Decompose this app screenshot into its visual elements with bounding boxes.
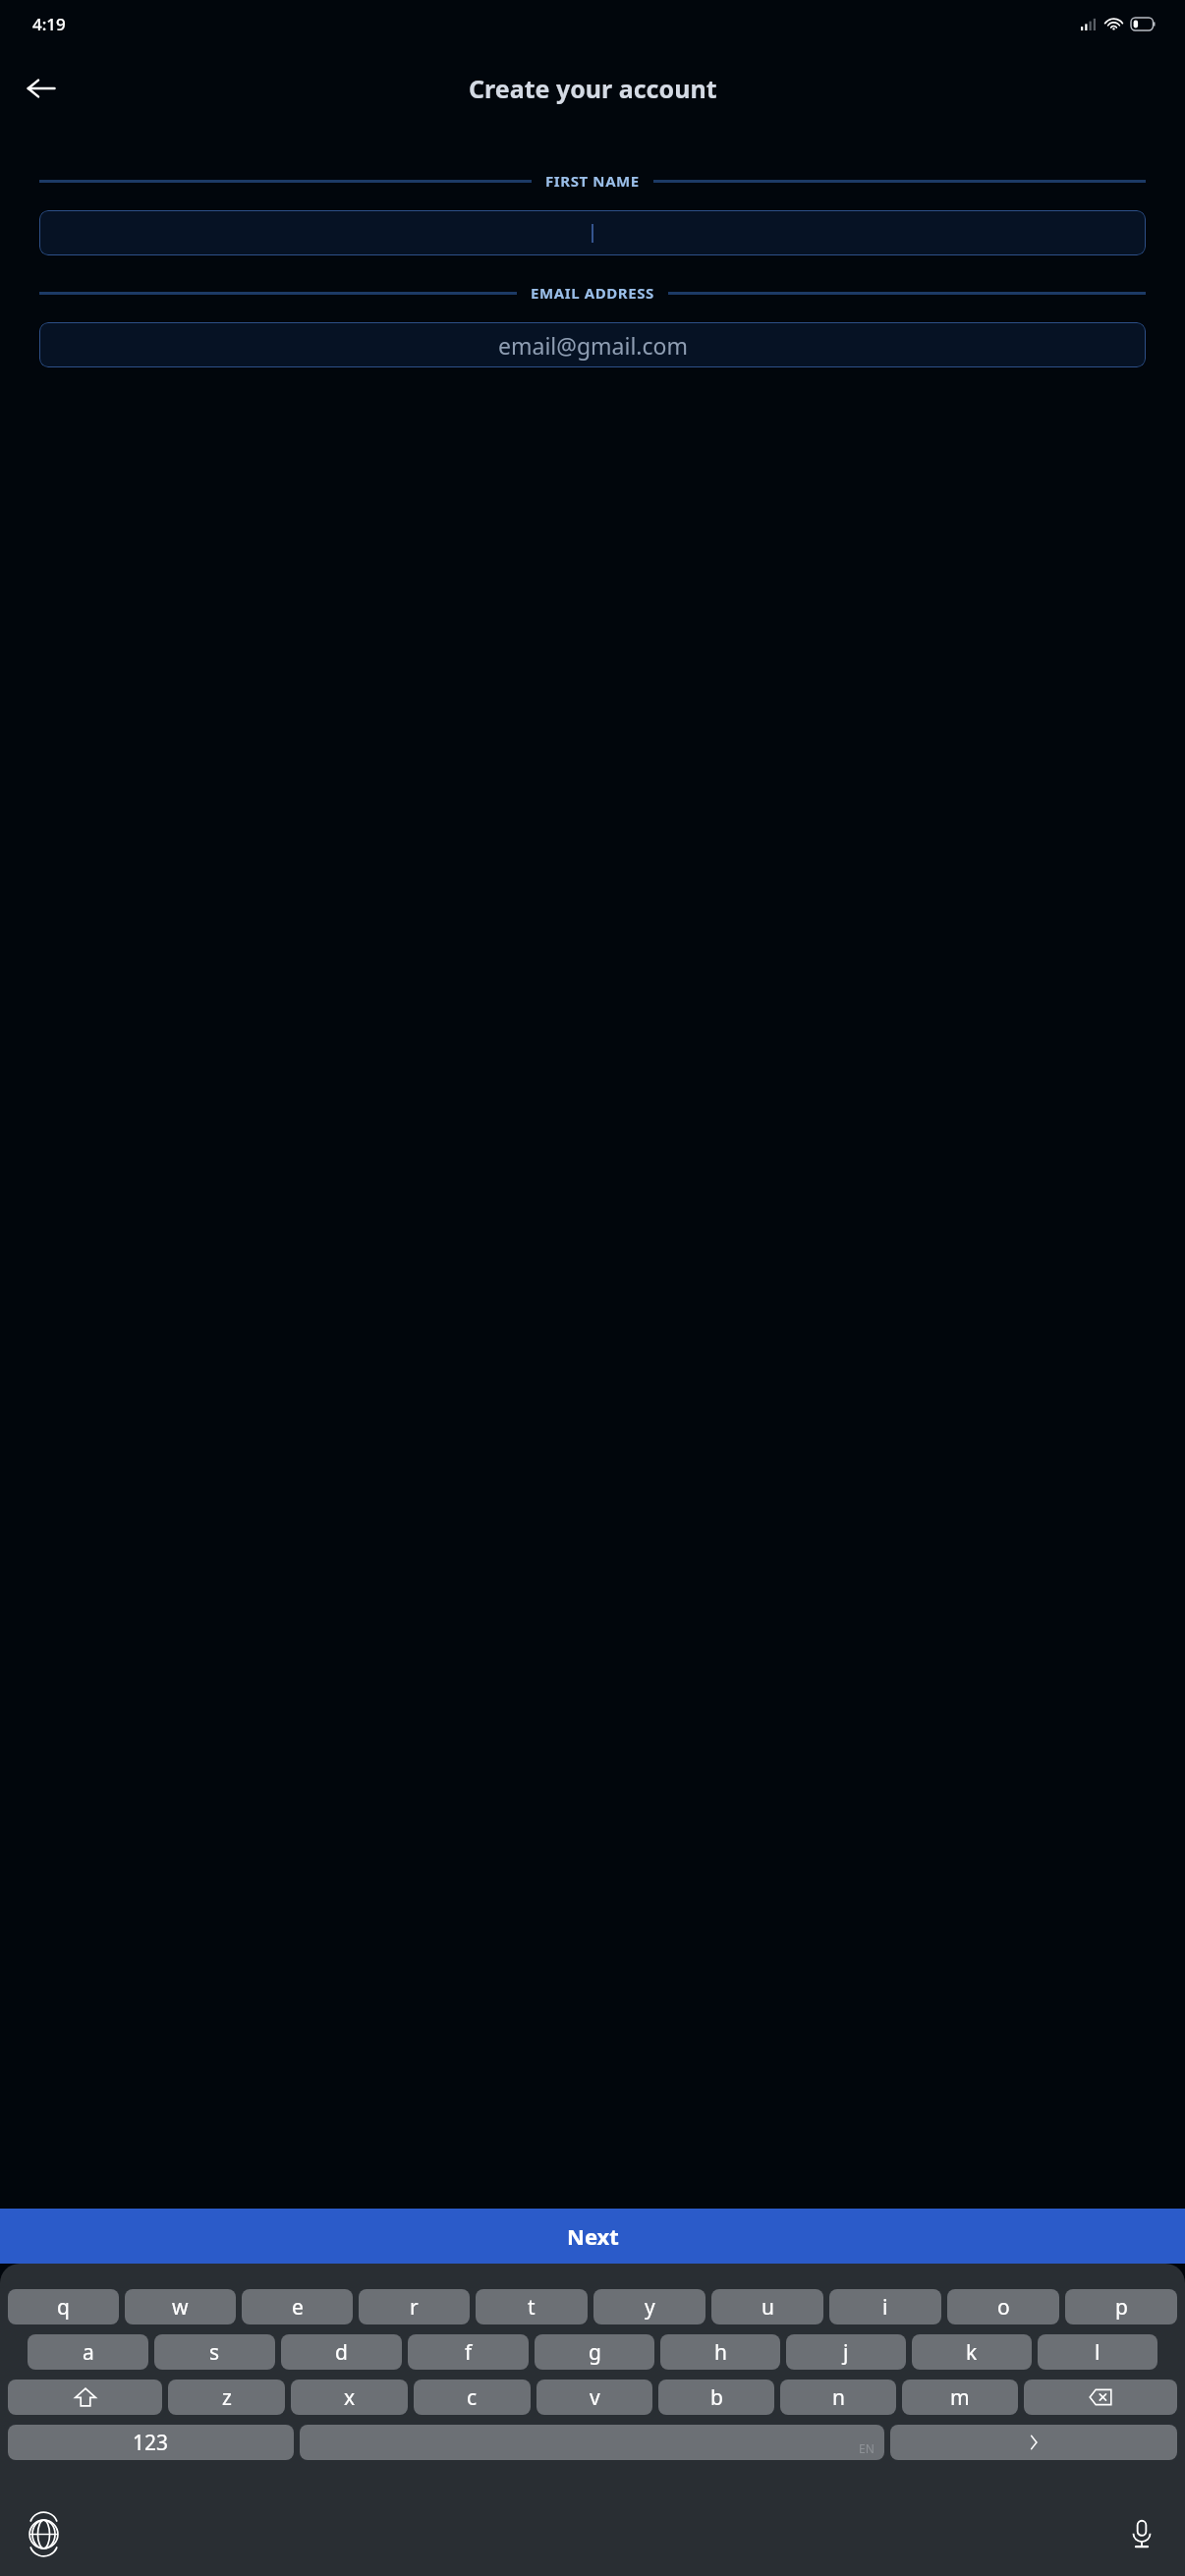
- staticText: a: [83, 2338, 94, 2367]
- staticText: q: [57, 2293, 70, 2322]
- button[interactable]: email@gmail.com: [39, 322, 1146, 367]
- staticText: z: [222, 2383, 232, 2412]
- staticText: f: [465, 2338, 473, 2367]
- button[interactable]: e: [242, 2289, 353, 2324]
- button[interactable]: f: [408, 2334, 529, 2370]
- button[interactable]: Shift: [8, 2380, 162, 2415]
- button[interactable]: r: [359, 2289, 470, 2324]
- staticText: Create your account: [469, 72, 717, 105]
- staticText: e: [292, 2293, 304, 2322]
- staticText: email@gmail.com: [498, 330, 688, 361]
- button[interactable]: m: [902, 2380, 1018, 2415]
- staticText: g: [589, 2338, 601, 2367]
- staticText: y: [645, 2293, 655, 2322]
- staticText: EN: [859, 2440, 875, 2456]
- staticText: m: [950, 2383, 970, 2412]
- staticText: k: [966, 2338, 978, 2367]
- staticText: i: [882, 2293, 888, 2322]
- button[interactable]: x: [291, 2380, 408, 2415]
- staticText: c: [467, 2383, 478, 2412]
- button[interactable]: s: [154, 2334, 275, 2370]
- staticText: r: [410, 2293, 419, 2322]
- staticText: v: [590, 2383, 600, 2412]
- button[interactable]: n: [780, 2380, 896, 2415]
- button[interactable]: 123: [8, 2425, 294, 2460]
- button[interactable]: c: [414, 2380, 531, 2415]
- staticText: s: [209, 2338, 220, 2367]
- staticText: Next: [567, 2221, 619, 2251]
- button[interactable]: a: [28, 2334, 148, 2370]
- button[interactable]: y: [593, 2289, 705, 2324]
- staticText: b: [710, 2383, 723, 2412]
- staticText: l: [1095, 2338, 1100, 2367]
- staticText: n: [832, 2383, 845, 2412]
- button[interactable]: l: [1038, 2334, 1157, 2370]
- button[interactable]: z: [168, 2380, 285, 2415]
- staticText: j: [843, 2338, 849, 2367]
- button[interactable]: Backspace: [1024, 2380, 1177, 2415]
- button[interactable]: Next: [0, 2209, 1185, 2264]
- button[interactable]: g: [535, 2334, 654, 2370]
- button[interactable]: k: [912, 2334, 1032, 2370]
- button[interactable]: u: [711, 2289, 823, 2324]
- button[interactable]: Voice input: [1114, 2506, 1169, 2561]
- button[interactable]: b: [658, 2380, 774, 2415]
- staticText: EMAIL ADDRESS: [531, 283, 654, 303]
- button[interactable]: h: [660, 2334, 780, 2370]
- button[interactable]: t: [476, 2289, 588, 2324]
- button[interactable]: q: [8, 2289, 119, 2324]
- staticText: FIRST NAME: [545, 171, 640, 191]
- staticText: d: [335, 2338, 348, 2367]
- staticText: 123: [133, 2429, 169, 2457]
- staticText: p: [1115, 2293, 1128, 2322]
- staticText: 4:19: [32, 13, 66, 35]
- staticText: h: [714, 2338, 727, 2367]
- button[interactable]: [39, 210, 1146, 255]
- button[interactable]: Back: [12, 59, 71, 118]
- button[interactable]: p: [1065, 2289, 1177, 2324]
- staticText: u: [762, 2293, 774, 2322]
- button[interactable]: Next: [890, 2425, 1177, 2460]
- staticText: w: [172, 2293, 189, 2322]
- button[interactable]: d: [281, 2334, 402, 2370]
- button[interactable]: o: [947, 2289, 1059, 2324]
- staticText: x: [344, 2383, 356, 2412]
- button[interactable]: j: [786, 2334, 906, 2370]
- button[interactable]: Change language: [16, 2506, 71, 2561]
- staticText: t: [528, 2293, 536, 2322]
- button[interactable]: v: [536, 2380, 652, 2415]
- staticText: o: [997, 2293, 1010, 2322]
- button[interactable]: i: [829, 2289, 941, 2324]
- button[interactable]: w: [125, 2289, 236, 2324]
